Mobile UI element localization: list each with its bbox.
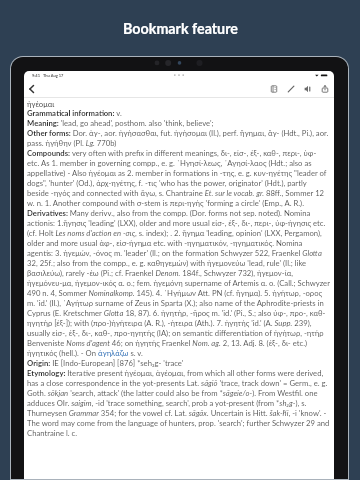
button[interactable]: Speak bbox=[301, 82, 315, 96]
button[interactable]: Back bbox=[24, 82, 38, 96]
staticText: ἡγέομαι Grammatical information: v. Mean… bbox=[27, 99, 330, 438]
button[interactable]: Share bbox=[318, 82, 332, 96]
staticText: 9:41 bbox=[32, 73, 40, 78]
staticText: Bookmark feature bbox=[123, 20, 238, 37]
staticText: Thu Aug 17 bbox=[43, 73, 64, 78]
button[interactable]: Edit bbox=[284, 82, 298, 96]
button[interactable]: Dictionary bbox=[267, 82, 281, 96]
